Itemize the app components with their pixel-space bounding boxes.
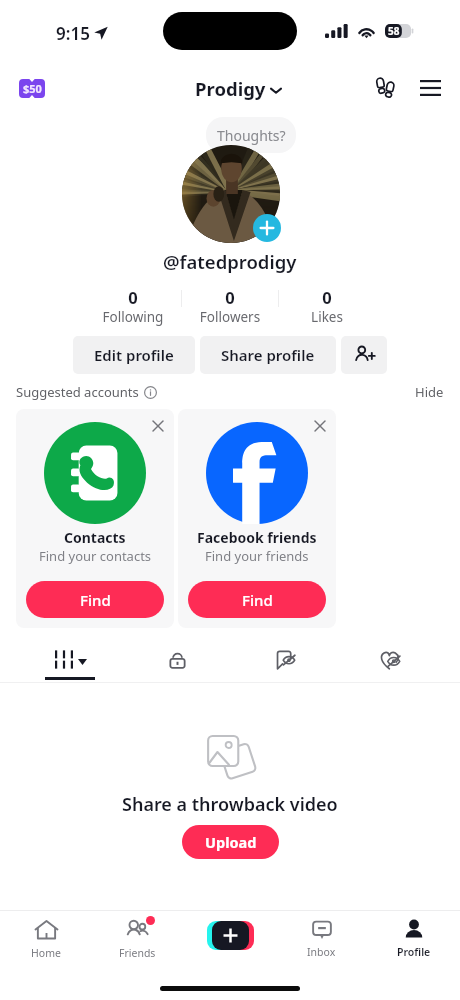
staticText: Prodigy bbox=[195, 76, 266, 101]
staticText: Friends bbox=[119, 946, 156, 960]
button[interactable]: Friends bbox=[105, 918, 169, 966]
staticText: Upload bbox=[205, 832, 257, 852]
button[interactable]: 0 bbox=[85, 286, 181, 326]
button[interactable]: Add to story bbox=[253, 214, 281, 242]
staticText: Suggested accounts bbox=[16, 383, 139, 401]
button[interactable]: Footprints activity bbox=[369, 72, 401, 104]
staticText: @fatedprodigy bbox=[163, 249, 297, 274]
button[interactable]: Private bbox=[156, 639, 198, 681]
staticText: Facebook friends bbox=[197, 528, 317, 547]
staticText: Followers bbox=[182, 308, 278, 326]
staticText: Share a throwback video bbox=[122, 792, 338, 817]
button[interactable]: Find friends bbox=[341, 336, 387, 374]
staticText: 0 bbox=[182, 286, 278, 308]
button[interactable]: Find bbox=[188, 581, 326, 618]
staticText: 0 bbox=[85, 286, 181, 308]
button[interactable]: Dismiss suggestion bbox=[16, 409, 174, 628]
button[interactable]: Profile photo bbox=[182, 145, 280, 243]
button[interactable]: 0 bbox=[279, 286, 375, 326]
staticText: 9:15 bbox=[56, 22, 90, 45]
staticText: Find bbox=[80, 590, 111, 610]
staticText: Inbox bbox=[307, 945, 336, 959]
button[interactable]: Edit profile bbox=[73, 336, 195, 374]
button[interactable]: Rewards 50 dollars bbox=[19, 79, 45, 98]
staticText: 0 bbox=[279, 286, 375, 308]
staticText: Find your friends bbox=[205, 547, 309, 565]
staticText: 58 bbox=[388, 24, 400, 38]
button[interactable]: Upload bbox=[182, 825, 279, 859]
button[interactable]: Dismiss suggestion bbox=[145, 413, 171, 439]
button[interactable]: Share profile bbox=[200, 336, 336, 374]
button[interactable]: Menu bbox=[415, 72, 447, 104]
button[interactable]: Inbox bbox=[289, 918, 353, 966]
button[interactable]: 0 bbox=[182, 286, 278, 326]
staticText: Following bbox=[85, 308, 181, 326]
button[interactable]: Thoughts? bbox=[206, 117, 296, 153]
button[interactable]: Liked bbox=[369, 639, 411, 681]
button[interactable]: Create new video bbox=[207, 921, 254, 950]
button[interactable]: Videos bbox=[20, 640, 120, 682]
button[interactable]: Dismiss suggestion bbox=[307, 413, 333, 439]
button[interactable]: Prodigy bbox=[195, 76, 283, 101]
staticText: Thoughts? bbox=[217, 126, 286, 145]
button[interactable]: Home bbox=[14, 918, 78, 966]
staticText: Edit profile bbox=[94, 345, 174, 365]
button[interactable]: Find bbox=[26, 581, 164, 618]
button[interactable]: Saved bbox=[264, 639, 306, 681]
staticText: Profile bbox=[397, 945, 431, 959]
staticText: Hide bbox=[415, 383, 444, 401]
button[interactable]: Dismiss suggestion bbox=[178, 409, 336, 628]
staticText: $50 bbox=[23, 81, 42, 96]
button[interactable]: Profile bbox=[382, 918, 446, 966]
staticText: Likes bbox=[279, 308, 375, 326]
staticText: Share profile bbox=[221, 345, 315, 365]
staticText: Home bbox=[31, 946, 61, 960]
staticText: Find your contacts bbox=[39, 547, 152, 565]
staticText: Contacts bbox=[64, 528, 126, 547]
button[interactable]: Hide bbox=[415, 383, 444, 401]
staticText: Find bbox=[242, 590, 273, 610]
